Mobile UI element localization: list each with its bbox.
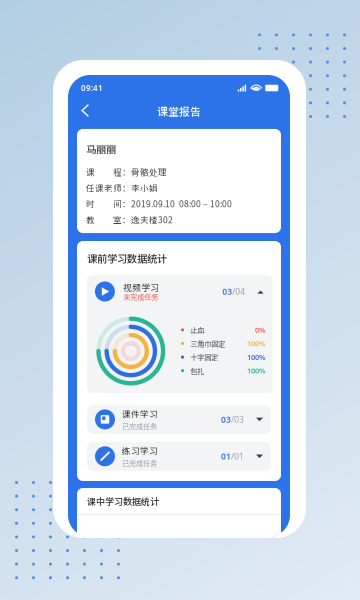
- staticText: 视频学习: [123, 281, 159, 293]
- staticText: 100%: [247, 352, 265, 362]
- staticText: 01: [221, 450, 231, 462]
- staticText: 教 室：: [86, 213, 131, 226]
- staticText: 03: [221, 414, 231, 425]
- staticText: 逸夫楼302: [131, 213, 173, 226]
- button[interactable]: [95, 281, 115, 301]
- staticText: 马丽丽: [86, 141, 116, 156]
- staticText: 03: [222, 286, 232, 297]
- staticText: /04: [232, 286, 245, 297]
- staticText: 练习学习: [122, 444, 158, 457]
- button[interactable]: 练习学习: [87, 442, 271, 471]
- staticText: 09:41: [81, 83, 103, 93]
- staticText: 课前学习数据统计: [87, 251, 167, 266]
- button[interactable]: 课件学习: [87, 405, 271, 434]
- staticText: 任课老师：: [86, 181, 131, 194]
- staticText: 时 间：: [86, 197, 131, 210]
- staticText: 课堂报告: [157, 103, 201, 119]
- staticText: 100%: [247, 338, 265, 348]
- staticText: 止血: [190, 325, 204, 335]
- staticText: 骨骼处理: [131, 166, 167, 178]
- staticText: 已完成任务: [122, 421, 157, 431]
- staticText: 课件学习: [122, 407, 158, 420]
- staticText: /03: [231, 414, 244, 425]
- staticText: /01: [231, 450, 244, 462]
- staticText: 未完成任务: [123, 291, 158, 302]
- staticText: 李小娟: [131, 181, 158, 194]
- staticText: 0%: [255, 325, 265, 335]
- staticText: 课中学习数据统计: [87, 494, 159, 507]
- staticText: 2019.09.10 08:00 – 10:00: [131, 197, 232, 210]
- staticText: 课 程：: [86, 166, 131, 178]
- staticText: 100%: [247, 366, 265, 376]
- staticText: 三角巾固定: [190, 338, 225, 349]
- staticText: 已完成任务: [122, 458, 157, 468]
- button[interactable]: [82, 105, 90, 117]
- staticText: 包扎: [190, 365, 204, 376]
- staticText: 十字固定: [190, 352, 218, 362]
